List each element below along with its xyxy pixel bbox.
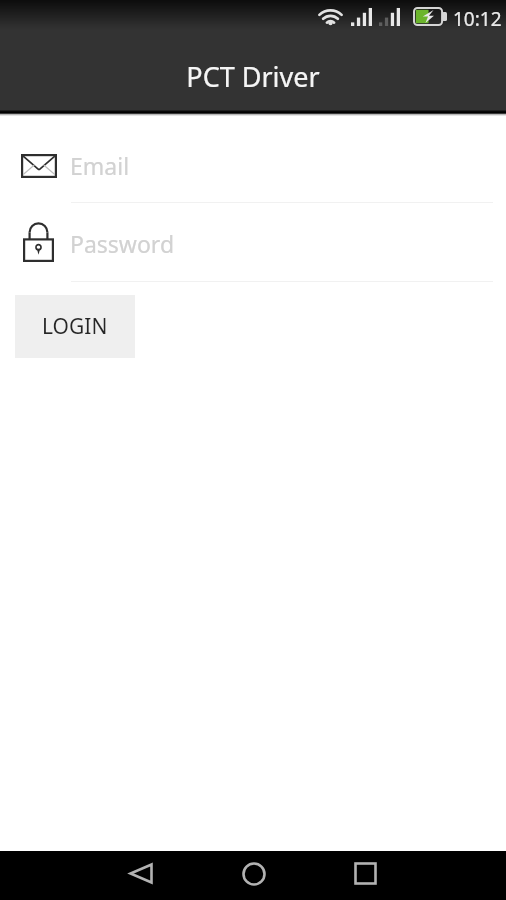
button[interactable]: Password [0,193,506,267]
button[interactable]: LOGIN [15,295,135,358]
staticText: 10:12 [453,6,502,32]
staticText: PCT Driver [186,58,320,95]
button[interactable]: Home [229,849,278,898]
button[interactable]: Email [0,114,506,188]
button[interactable]: Back [116,849,165,898]
staticText: Password [70,228,175,259]
staticText: Email [70,150,130,181]
button[interactable]: Recents [341,849,390,898]
staticText: LOGIN [42,312,108,341]
